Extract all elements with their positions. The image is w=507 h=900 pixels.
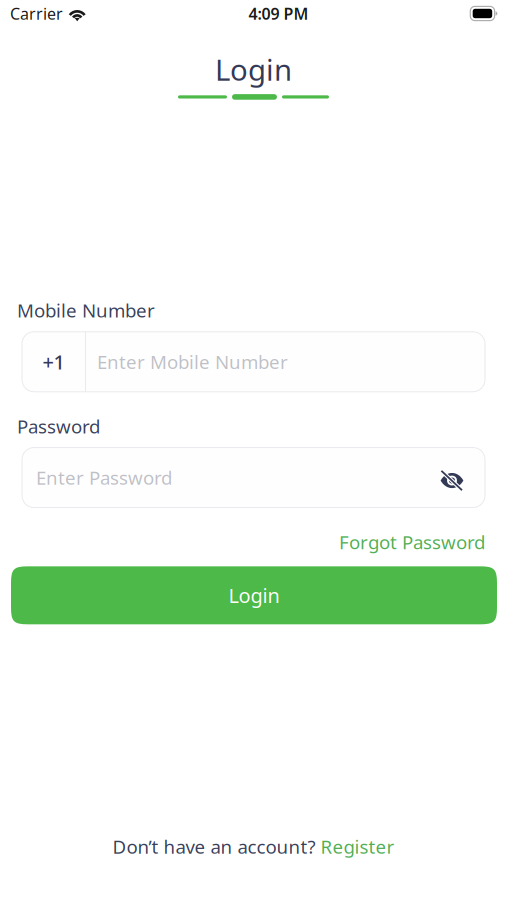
staticText: Enter Password bbox=[36, 465, 172, 490]
staticText: Login bbox=[215, 50, 292, 89]
staticText: 4:09 PM bbox=[248, 3, 308, 24]
button[interactable]: Register bbox=[320, 834, 394, 859]
staticText: Carrier bbox=[10, 3, 63, 24]
staticText: Register bbox=[320, 834, 394, 859]
staticText: Mobile Number bbox=[17, 298, 155, 323]
button[interactable]: Forgot Password bbox=[339, 529, 485, 554]
button[interactable]: Password bbox=[22, 447, 440, 507]
button[interactable]: Login bbox=[11, 566, 497, 624]
staticText: +1 bbox=[42, 348, 64, 375]
staticText: Password bbox=[17, 414, 100, 438]
staticText: Forgot Password bbox=[339, 529, 485, 554]
staticText: Login bbox=[228, 582, 279, 609]
staticText: Enter Mobile Number bbox=[97, 349, 288, 374]
staticText: Don’t have an account? bbox=[112, 834, 315, 859]
button[interactable]: Mobile Number bbox=[86, 332, 485, 392]
button[interactable]: Show password bbox=[440, 447, 485, 507]
button[interactable]: +1 bbox=[22, 332, 85, 392]
